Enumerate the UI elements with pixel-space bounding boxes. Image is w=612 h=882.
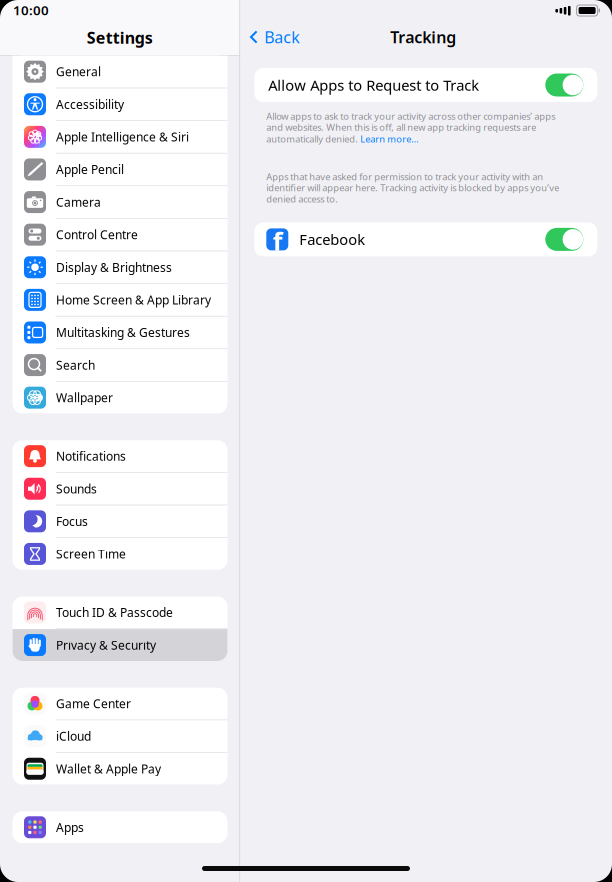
staticText: and websites. When this is off, all new … xyxy=(266,121,536,133)
button[interactable]: Home Screen & App Library xyxy=(12,284,227,316)
button[interactable]: Touch ID & Passcode xyxy=(12,596,227,629)
button[interactable]: Wallet & Apple Pay xyxy=(12,753,227,785)
button[interactable]: Screen Time xyxy=(12,538,227,570)
button[interactable]: Wallpaper xyxy=(12,382,227,414)
staticText: Back xyxy=(264,26,300,48)
staticText: Accessibility xyxy=(56,96,124,112)
staticText: Allow apps to ask to track your activity… xyxy=(266,110,555,122)
button[interactable]: Toggle xyxy=(545,73,583,96)
button[interactable]: Back xyxy=(240,20,300,54)
staticText: Search xyxy=(56,357,95,373)
button[interactable]: Game Center xyxy=(12,688,227,720)
button[interactable]: Multitasking & Gestures xyxy=(12,316,227,349)
staticText: identifier will appear here. Tracking ac… xyxy=(266,181,559,194)
staticText: Control Centre xyxy=(56,227,138,243)
button[interactable]: Search xyxy=(12,349,227,382)
staticText: Apple Intelligence & Siri xyxy=(56,129,189,145)
button[interactable]: Accessibility xyxy=(12,88,227,121)
staticText: 10:00 xyxy=(13,1,49,19)
staticText: Settings xyxy=(87,27,153,48)
staticText: iCloud xyxy=(56,728,91,744)
button[interactable]: Apple Pencil xyxy=(12,153,227,186)
button[interactable]: Allow Apps to Request to Track xyxy=(254,68,597,102)
button[interactable]: Control Centre xyxy=(12,219,227,251)
staticText: Sounds xyxy=(56,481,97,497)
staticText: Facebook xyxy=(299,230,365,249)
staticText: Game Center xyxy=(56,696,131,711)
button[interactable]: General xyxy=(12,56,227,88)
staticText: Apple Pencil xyxy=(56,161,124,177)
button[interactable]: iCloud xyxy=(12,720,227,753)
staticText: Tracking xyxy=(390,26,456,48)
button[interactable]: Camera xyxy=(12,186,227,219)
staticText: Home Screen & App Library xyxy=(56,292,211,308)
staticText: Display & Brightness xyxy=(56,259,172,275)
button[interactable]: Notifications xyxy=(12,440,227,473)
button[interactable]: f xyxy=(254,222,597,256)
staticText: Notifications xyxy=(56,448,126,464)
staticText: Multitasking & Gestures xyxy=(56,324,190,340)
button[interactable]: Sounds xyxy=(12,473,227,505)
staticText: Learn more… xyxy=(360,133,418,145)
staticText: General xyxy=(56,64,101,80)
button[interactable]: Apps xyxy=(12,811,227,843)
staticText: Apps xyxy=(56,819,84,835)
button[interactable]: Learn more… xyxy=(360,133,418,145)
staticText: Wallet & Apple Pay xyxy=(56,761,161,777)
button[interactable]: Apple Intelligence & Siri xyxy=(12,121,227,153)
staticText: Apps that have asked for permission to t… xyxy=(266,170,543,183)
staticText: denied access to. xyxy=(266,193,338,205)
staticText: f xyxy=(273,224,283,258)
staticText: Allow Apps to Request to Track xyxy=(268,75,479,95)
button[interactable]: Focus xyxy=(12,505,227,538)
button[interactable]: Toggle xyxy=(545,228,583,251)
staticText: Privacy & Security xyxy=(56,637,156,653)
button[interactable]: Privacy & Security xyxy=(12,629,227,661)
staticText: Wallpaper xyxy=(56,390,113,406)
staticText: Screen Time xyxy=(56,546,126,562)
button[interactable]: Display & Brightness xyxy=(12,251,227,284)
staticText: automatically denied. xyxy=(266,133,360,145)
staticText: Camera xyxy=(56,194,101,210)
staticText: Touch ID & Passcode xyxy=(56,604,173,620)
staticText: Focus xyxy=(56,513,88,529)
